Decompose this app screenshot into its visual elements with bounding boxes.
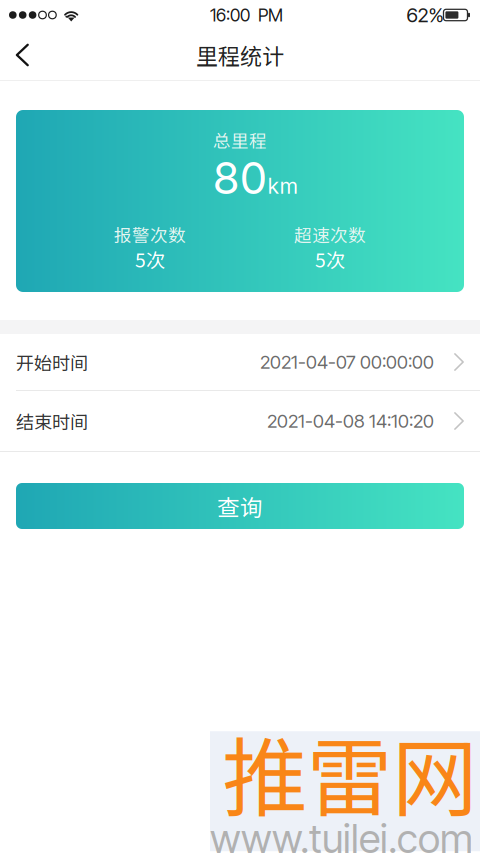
- staticText: 5次: [315, 245, 345, 273]
- staticText: 里程统计: [196, 39, 284, 71]
- staticText: 16:00 PM: [210, 4, 283, 26]
- staticText: km: [267, 173, 298, 199]
- staticText: 报警次数: [114, 221, 186, 247]
- staticText: 2021-04-08 14:10:20: [267, 410, 434, 432]
- button[interactable]: 查询: [16, 483, 464, 529]
- staticText: 5次: [135, 245, 165, 273]
- button[interactable]: 结束时间: [0, 391, 480, 451]
- button[interactable]: 开始时间: [0, 334, 480, 390]
- staticText: 推雷网: [222, 710, 477, 834]
- staticText: 超速次数: [294, 221, 366, 247]
- staticText: 80: [212, 151, 267, 205]
- staticText: www.tuilei.com: [210, 814, 473, 853]
- staticText: 2021-04-07 00:00:00: [260, 351, 434, 373]
- staticText: 查询: [217, 490, 263, 522]
- staticText: 总里程: [213, 127, 267, 152]
- button[interactable]: 返回: [0, 31, 45, 79]
- staticText: 62%: [406, 3, 443, 27]
- staticText: 开始时间: [16, 349, 88, 375]
- staticText: 结束时间: [16, 408, 88, 434]
